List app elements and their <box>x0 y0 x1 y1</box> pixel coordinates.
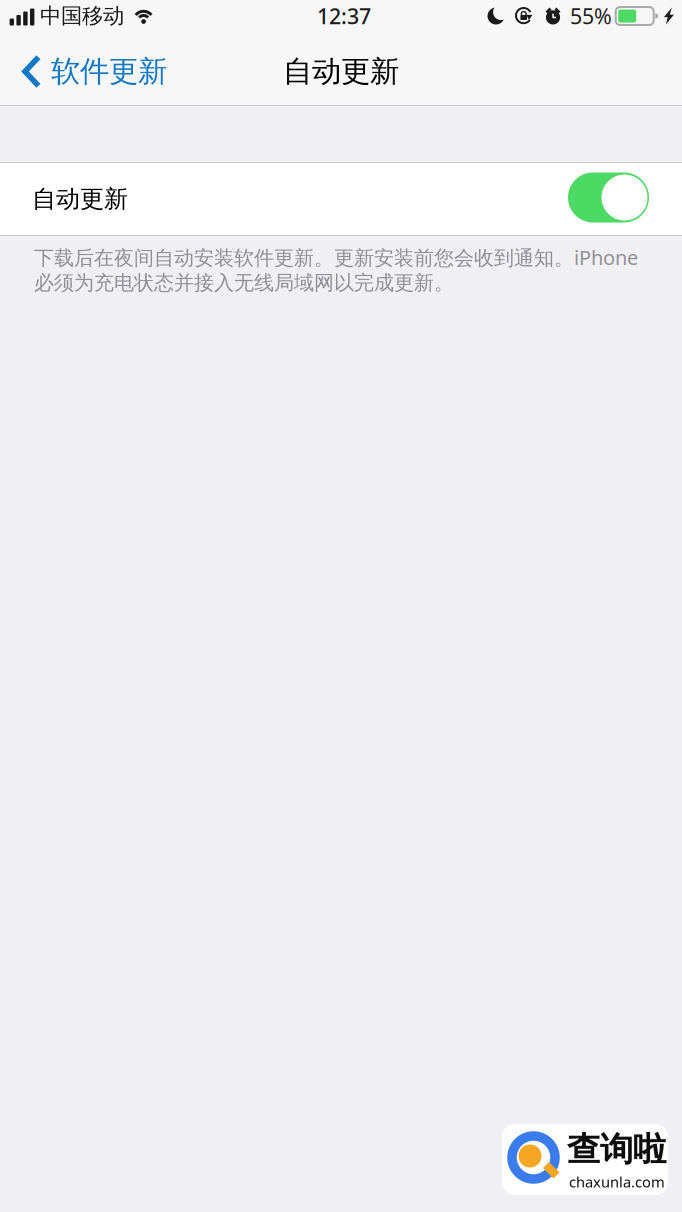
staticText: 软件更新 <box>51 53 167 89</box>
staticText: 12:37 <box>317 2 371 30</box>
staticText: 自动更新 <box>32 184 128 214</box>
staticText: 查询啦 <box>567 1129 666 1170</box>
button[interactable]: 软件更新 <box>0 38 179 105</box>
staticText: 下载后在夜间自动安装软件更新。更新安装前您会收到通知。iPhone 必须为充电状… <box>34 244 638 295</box>
staticText: 55% <box>570 2 612 30</box>
staticText: 中国移动 <box>40 3 124 29</box>
staticText: chaxunla.com <box>569 1172 665 1191</box>
staticText: 自动更新 <box>283 53 399 89</box>
button[interactable]: 自动更新 <box>0 163 682 235</box>
